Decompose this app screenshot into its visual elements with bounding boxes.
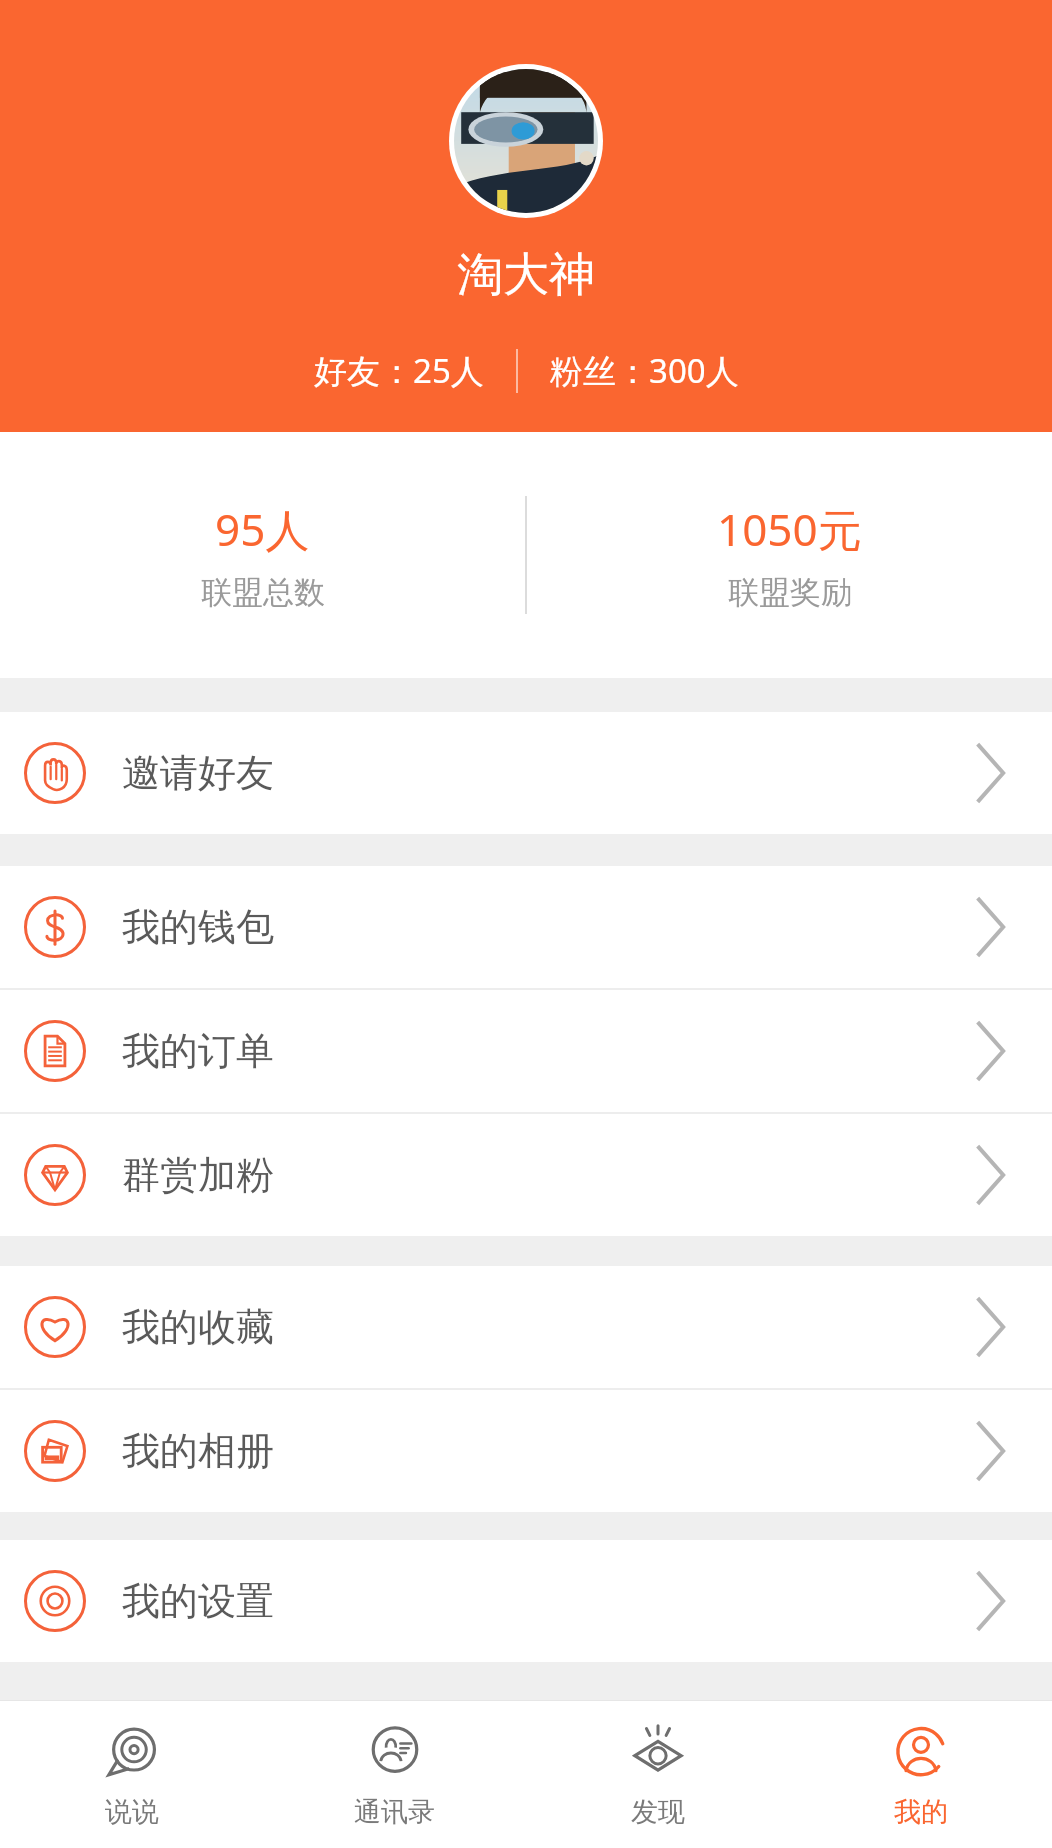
staticText: 1050元 bbox=[717, 499, 862, 559]
staticText: 我的相册 bbox=[122, 1427, 274, 1475]
staticText: 发现 bbox=[631, 1795, 685, 1829]
staticText: 联盟奖励 bbox=[728, 573, 852, 612]
button[interactable]: 95人 bbox=[0, 432, 525, 678]
button[interactable]: 我的设置 bbox=[0, 1540, 1052, 1662]
button[interactable]: 我的钱包 bbox=[0, 866, 1052, 988]
button[interactable]: 邀请好友 bbox=[0, 712, 1052, 834]
button[interactable]: 通讯录 bbox=[263, 1700, 526, 1848]
button[interactable]: 发现 bbox=[526, 1700, 789, 1848]
button[interactable]: 1050元 bbox=[527, 432, 1052, 678]
staticText: 95人 bbox=[215, 499, 310, 559]
staticText: 我的钱包 bbox=[122, 903, 274, 951]
button[interactable]: 说说 bbox=[0, 1700, 263, 1848]
staticText: 淘大神 bbox=[457, 246, 595, 304]
staticText: 通讯录 bbox=[354, 1795, 435, 1829]
button[interactable]: 我的相册 bbox=[0, 1390, 1052, 1512]
staticText: 我的 bbox=[894, 1795, 948, 1829]
button[interactable]: 我的订单 bbox=[0, 990, 1052, 1112]
staticText: 联盟总数 bbox=[201, 573, 325, 612]
staticText: 好友：25人 bbox=[314, 348, 484, 393]
button[interactable]: 我的收藏 bbox=[0, 1266, 1052, 1388]
staticText: 群赏加粉 bbox=[122, 1151, 274, 1199]
staticText: 说说 bbox=[105, 1795, 159, 1829]
staticText: 我的订单 bbox=[122, 1027, 274, 1075]
button[interactable]: Profile photo bbox=[449, 64, 603, 218]
staticText: 我的设置 bbox=[122, 1577, 274, 1625]
staticText: 邀请好友 bbox=[122, 749, 274, 797]
staticText: 粉丝：300人 bbox=[550, 348, 739, 393]
button[interactable]: 群赏加粉 bbox=[0, 1114, 1052, 1236]
button[interactable]: 我的 bbox=[789, 1700, 1052, 1848]
staticText: 我的收藏 bbox=[122, 1303, 274, 1351]
